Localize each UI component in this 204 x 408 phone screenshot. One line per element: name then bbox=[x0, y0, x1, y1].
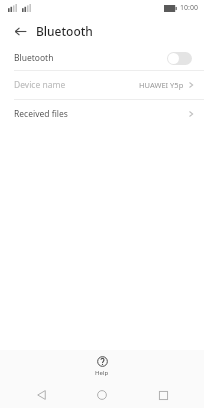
staticText: Device name bbox=[14, 79, 66, 91]
staticText: HUAWEI Y5p bbox=[139, 80, 184, 90]
staticText: 10:00 bbox=[180, 3, 198, 13]
button[interactable]: Device name bbox=[0, 71, 204, 99]
button[interactable]: Back bbox=[8, 19, 32, 43]
staticText: Bluetooth bbox=[14, 52, 54, 64]
button[interactable]: Recents bbox=[143, 382, 183, 408]
button[interactable]: Home bbox=[82, 382, 122, 408]
button[interactable]: Help bbox=[87, 354, 117, 379]
staticText: Bluetooth bbox=[36, 23, 93, 39]
button[interactable]: Received files bbox=[0, 100, 204, 128]
button[interactable]: Bluetooth bbox=[0, 46, 204, 70]
button[interactable]: Back bbox=[21, 382, 61, 408]
staticText: Received files bbox=[14, 108, 68, 120]
staticText: Help bbox=[95, 369, 109, 377]
